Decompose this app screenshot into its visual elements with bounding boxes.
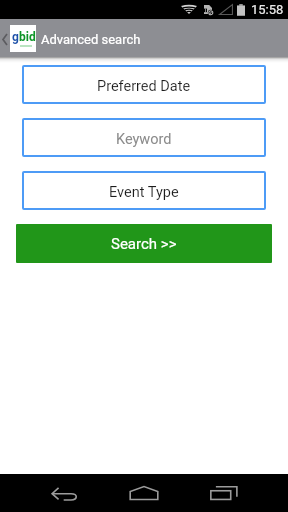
- button[interactable]: Search >>: [16, 224, 272, 263]
- button[interactable]: Keyword: [22, 118, 266, 157]
- staticText: 15:58: [251, 2, 284, 17]
- staticText: bid: [19, 30, 36, 44]
- button[interactable]: Home: [104, 474, 184, 512]
- button[interactable]: Recent apps: [184, 474, 264, 512]
- button[interactable]: Preferred Date: [22, 65, 266, 104]
- button[interactable]: Back: [24, 474, 104, 512]
- button[interactable]: Navigate up: [0, 19, 10, 57]
- staticText: Advanced search: [41, 32, 141, 47]
- staticText: Search >>: [111, 235, 177, 253]
- staticText: Preferred Date: [97, 78, 191, 95]
- staticText: Keyword: [116, 131, 172, 148]
- staticText: g: [12, 30, 19, 44]
- button[interactable]: Event Type: [22, 171, 266, 210]
- staticText: Event Type: [109, 184, 179, 201]
